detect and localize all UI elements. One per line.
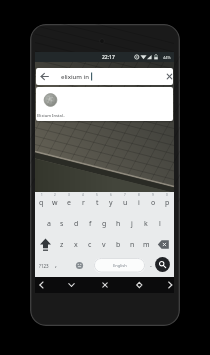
button[interactable]: j [125,213,139,234]
staticText: English [113,263,127,268]
staticText: n [130,240,135,250]
staticText: 4 [82,193,84,197]
staticText: 44% [163,55,171,60]
staticText: r [82,198,85,208]
staticText: f [89,219,92,229]
staticText: 22:17 [102,54,115,61]
staticText: elixium in [61,73,89,81]
staticText: s [60,219,64,229]
button[interactable]: Elixium Instal.. [36,87,66,121]
button[interactable]: q [35,192,48,213]
staticText: 5 [96,193,98,197]
staticText: e [67,198,71,208]
staticText: o [151,198,156,208]
staticText: d [74,219,79,229]
staticText: z [60,240,64,250]
staticText: , [55,260,57,270]
button[interactable]: p [160,192,174,213]
button[interactable] [153,234,174,255]
button[interactable]: m [139,234,153,255]
button[interactable]: d [69,213,83,234]
button[interactable] [146,277,174,293]
button[interactable] [35,234,55,255]
staticText: p [165,198,170,208]
button[interactable]: , [51,254,61,275]
button[interactable]: z [55,234,69,255]
staticText: 7 [124,193,126,197]
staticText: a [47,219,51,229]
button[interactable]: x [69,234,83,255]
staticText: h [116,219,121,229]
staticText: i [138,198,140,208]
staticText: t [96,198,99,208]
button[interactable] [155,257,170,272]
button[interactable]: a [42,213,55,234]
staticText: q [39,198,44,208]
button[interactable]: ?123 [35,255,53,276]
staticText: x [74,240,78,250]
button[interactable]: v [97,234,111,255]
staticText: . [150,260,152,270]
button[interactable]: n [125,234,139,255]
button[interactable]: . [146,254,156,275]
staticText: 1 [41,193,43,197]
button[interactable]: y [104,192,118,213]
button[interactable]: t [90,192,104,213]
button[interactable]: w [48,192,62,213]
staticText: 6 [110,193,112,197]
button[interactable]: g [97,213,111,234]
staticText: y [109,198,113,208]
button[interactable]: r [76,192,90,213]
staticText: 8 [138,193,140,197]
staticText: 0 [166,193,168,197]
staticText: Elixium Instal.. [37,113,65,118]
staticText: 9 [152,193,154,197]
staticText: l [159,219,161,229]
button[interactable] [35,277,62,293]
staticText: j [131,219,133,229]
button[interactable]: u [118,192,132,213]
staticText: v [102,240,106,250]
button[interactable] [74,255,85,276]
staticText: k [144,219,148,229]
staticText: g [102,219,107,229]
button[interactable]: o [146,192,160,213]
button[interactable]: s [55,213,69,234]
staticText: c [88,240,92,250]
staticText: u [123,198,128,208]
button[interactable]: e [62,192,76,213]
button[interactable]: c [83,234,97,255]
button[interactable]: b [111,234,125,255]
button[interactable]: i [132,192,146,213]
button[interactable]: k [139,213,153,234]
button[interactable] [62,277,90,293]
staticText: 2 [54,193,56,197]
staticText: w [52,198,58,208]
staticText: ?123 [39,263,49,269]
button[interactable]: elixium in [36,68,173,85]
staticText: m [143,240,150,250]
button[interactable]: l [153,213,167,234]
button[interactable] [118,277,146,293]
staticText: 3 [68,193,70,197]
button[interactable] [90,277,118,293]
staticText: b [116,240,121,250]
button[interactable]: English [94,258,145,273]
button[interactable]: h [111,213,125,234]
button[interactable]: f [83,213,97,234]
